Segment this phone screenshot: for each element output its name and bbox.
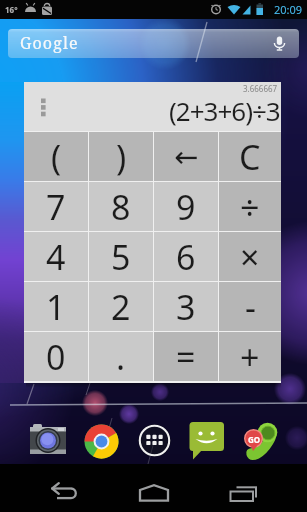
staticText: . xyxy=(116,334,126,380)
staticText: ) xyxy=(116,134,127,180)
button[interactable] xyxy=(0,464,103,512)
staticText: 16° xyxy=(5,4,18,15)
staticText: ÷ xyxy=(240,184,260,230)
button[interactable] xyxy=(205,464,307,512)
button[interactable] xyxy=(84,424,119,459)
button[interactable]: 3 xyxy=(154,282,218,331)
staticText: GO xyxy=(248,434,261,445)
button[interactable]: ) xyxy=(89,132,153,181)
staticText: 2 xyxy=(111,284,131,330)
staticText: - xyxy=(245,284,256,330)
button[interactable]: C xyxy=(219,132,281,181)
button[interactable]: + xyxy=(219,332,281,381)
button[interactable]: Google xyxy=(8,29,299,58)
button[interactable]: 8 xyxy=(89,182,153,231)
staticText: × xyxy=(240,234,260,280)
staticText: 4 xyxy=(46,234,66,280)
staticText: C xyxy=(239,134,261,180)
staticText: Google xyxy=(20,32,79,54)
staticText: 9 xyxy=(176,184,196,230)
button[interactable]: ÷ xyxy=(219,182,281,231)
button[interactable]: 5 xyxy=(89,232,153,281)
button[interactable]: 7 xyxy=(24,182,88,231)
staticText: 20:09 xyxy=(274,2,303,17)
staticText: ← xyxy=(174,140,199,174)
staticText: 1 xyxy=(46,284,66,330)
staticText: 5 xyxy=(111,234,131,280)
staticText: 3 xyxy=(176,284,196,330)
button[interactable] xyxy=(29,422,66,459)
button[interactable]: - xyxy=(219,282,281,331)
button[interactable]: = xyxy=(154,332,218,381)
staticText: ( xyxy=(51,134,62,180)
button[interactable]: GO xyxy=(242,421,279,461)
staticText: (2+3+6)÷3 xyxy=(169,93,280,128)
staticText: 7 xyxy=(46,184,66,230)
button[interactable]: ( xyxy=(24,132,88,181)
staticText: 3.666667 xyxy=(243,83,278,94)
button[interactable] xyxy=(189,421,225,460)
staticText: 0 xyxy=(46,334,66,380)
button[interactable]: 9 xyxy=(154,182,218,231)
button[interactable] xyxy=(103,464,205,512)
button[interactable]: ← xyxy=(154,132,218,181)
button[interactable]: 2 xyxy=(89,282,153,331)
button[interactable]: 0 xyxy=(24,332,88,381)
staticText: 8 xyxy=(111,184,131,230)
button[interactable] xyxy=(138,424,171,457)
staticText: 6 xyxy=(176,234,196,280)
button[interactable]: 1 xyxy=(24,282,88,331)
button[interactable]: × xyxy=(219,232,281,281)
button[interactable]: 6 xyxy=(154,232,218,281)
staticText: = xyxy=(176,334,196,380)
button[interactable]: 4 xyxy=(24,232,88,281)
staticText: + xyxy=(240,334,260,380)
button[interactable]: . xyxy=(89,332,153,381)
